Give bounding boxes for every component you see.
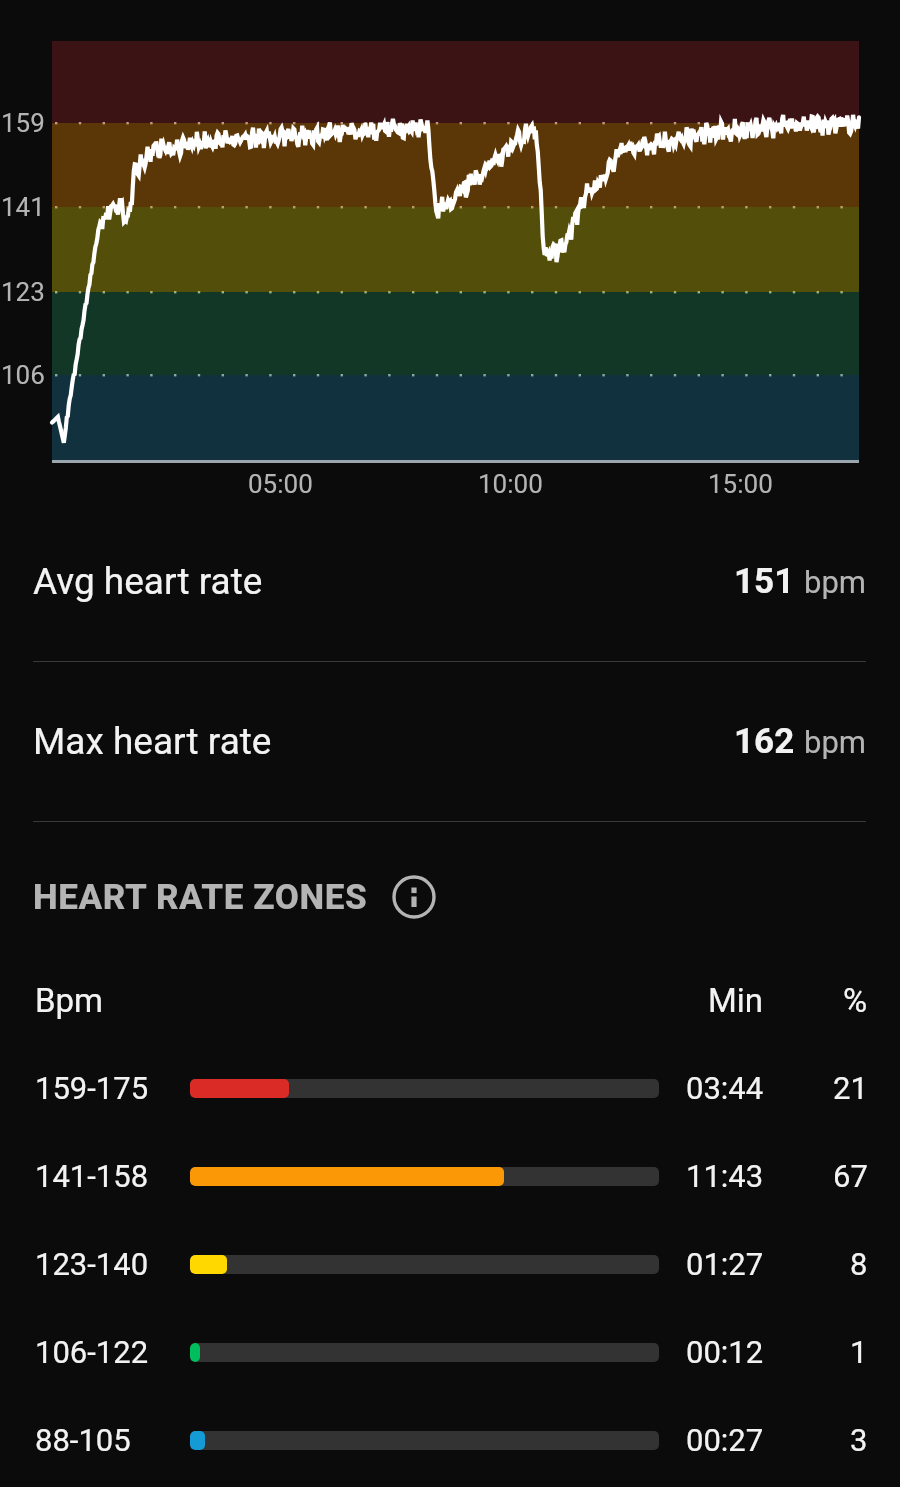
staticText: 03:44 <box>686 1070 764 1106</box>
staticText: 05:00 <box>248 469 313 499</box>
staticText: 106-122 <box>35 1334 149 1370</box>
staticText: bpm <box>804 724 866 760</box>
staticText: 151 <box>734 561 795 602</box>
button[interactable]: 123-140 <box>0 1220 900 1308</box>
staticText: Min <box>708 981 764 1020</box>
staticText: 1 <box>850 1334 868 1370</box>
staticText: 01:27 <box>686 1246 764 1282</box>
staticText: 106 <box>1 360 45 390</box>
staticText: 123 <box>1 277 45 307</box>
staticText: 141 <box>1 192 45 222</box>
button[interactable]: 106-122 <box>0 1308 900 1396</box>
button[interactable]: 88-105 <box>0 1396 900 1484</box>
staticText: 3 <box>850 1422 868 1458</box>
staticText: Bpm <box>35 981 104 1020</box>
button[interactable]: 159-175 <box>0 1044 900 1132</box>
staticText: 159-175 <box>35 1070 149 1106</box>
staticText: 162 <box>734 721 795 762</box>
button[interactable]: Info about heart rate zones <box>388 871 440 923</box>
staticText: 00:27 <box>686 1422 764 1458</box>
staticText: 141-158 <box>35 1158 149 1194</box>
staticText: 21 <box>833 1070 868 1106</box>
staticText: 15:00 <box>708 469 773 499</box>
staticText: 123-140 <box>35 1246 149 1282</box>
button[interactable]: Max heart rate <box>0 662 900 821</box>
staticText: 88-105 <box>35 1422 131 1458</box>
button[interactable]: Avg heart rate <box>0 502 900 661</box>
staticText: Max heart rate <box>33 720 272 763</box>
button[interactable]: 141-158 <box>0 1132 900 1220</box>
staticText: 00:12 <box>686 1334 764 1370</box>
staticText: % <box>843 981 868 1020</box>
staticText: 67 <box>833 1158 868 1194</box>
staticText: HEART RATE ZONES <box>33 877 368 918</box>
staticText: Avg heart rate <box>33 560 263 603</box>
staticText: 10:00 <box>478 469 543 499</box>
staticText: 159 <box>1 108 45 138</box>
staticText: 11:43 <box>686 1158 764 1194</box>
staticText: 8 <box>850 1246 868 1282</box>
staticText: bpm <box>804 564 866 600</box>
